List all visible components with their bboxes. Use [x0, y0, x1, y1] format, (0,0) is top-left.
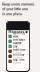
staticText: Garden day [13, 42, 22, 48]
staticText: Morning walk [13, 32, 25, 38]
button[interactable]: Morning walk [7, 34, 29, 39]
button[interactable]: Garden day [7, 44, 29, 49]
button[interactable]: Bath time [7, 49, 29, 54]
button[interactable]: Profile [25, 31, 28, 33]
staticText: 12 photos [13, 38, 22, 41]
staticText: Bath time [13, 48, 25, 51]
staticText: 5 photos [13, 51, 21, 54]
button[interactable]: Nap time [7, 59, 29, 64]
button[interactable]: Birthday [7, 54, 29, 59]
button[interactable]: First steps [7, 39, 29, 44]
staticText: in one place [2, 12, 22, 16]
staticText: Birthday [13, 53, 24, 56]
staticText: Keep every memory [2, 2, 34, 6]
staticText: Nap time [13, 58, 24, 61]
staticText: Memories [8, 30, 24, 34]
staticText: First steps [13, 38, 25, 41]
staticText: of your little one [2, 7, 28, 11]
staticText: 9 photos [13, 61, 21, 64]
staticText: 21 photos [13, 48, 22, 51]
staticText: 34 photos [13, 56, 22, 59]
staticText: 8 photos [13, 41, 21, 44]
